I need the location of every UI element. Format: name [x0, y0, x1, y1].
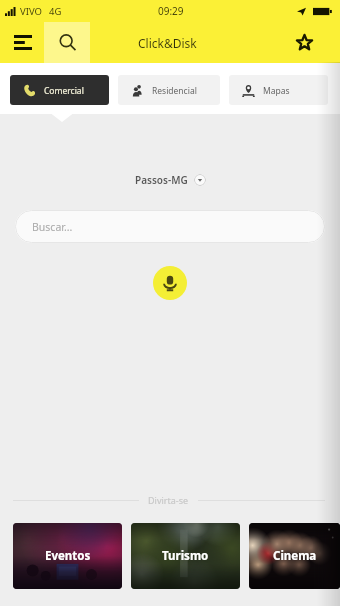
staticText: Click&Disk — [138, 35, 197, 51]
staticText: Passos-MG — [135, 173, 188, 187]
button[interactable]: Mapas — [229, 75, 328, 105]
staticText: Divirta-se — [148, 494, 189, 506]
button[interactable]: Search — [44, 22, 90, 63]
button[interactable]: Residencial — [118, 75, 220, 105]
button[interactable]: Eventos — [13, 523, 122, 589]
staticText: Buscar... — [32, 220, 73, 234]
button[interactable]: Favorites — [283, 22, 325, 63]
staticText: Residencial — [152, 85, 197, 97]
button[interactable]: Click&Disk — [121, 22, 213, 63]
staticText: Eventos — [45, 548, 91, 564]
staticText: Turismo — [162, 548, 209, 564]
staticText: VIVO — [20, 5, 42, 18]
button[interactable]: Comercial — [10, 75, 109, 105]
staticText: Comercial — [44, 85, 84, 97]
staticText: Cinema — [273, 548, 317, 564]
button[interactable]: Menu — [3, 22, 43, 63]
button[interactable]: Turismo — [131, 523, 240, 589]
button[interactable]: Voice search — [153, 266, 187, 300]
button[interactable]: Buscar... — [15, 210, 325, 243]
button[interactable]: Passos-MG — [135, 173, 206, 187]
staticText: 4G — [49, 5, 62, 18]
button[interactable]: Cinema — [249, 523, 340, 589]
staticText: 09:29 — [158, 4, 184, 18]
staticText: Mapas — [263, 85, 290, 97]
